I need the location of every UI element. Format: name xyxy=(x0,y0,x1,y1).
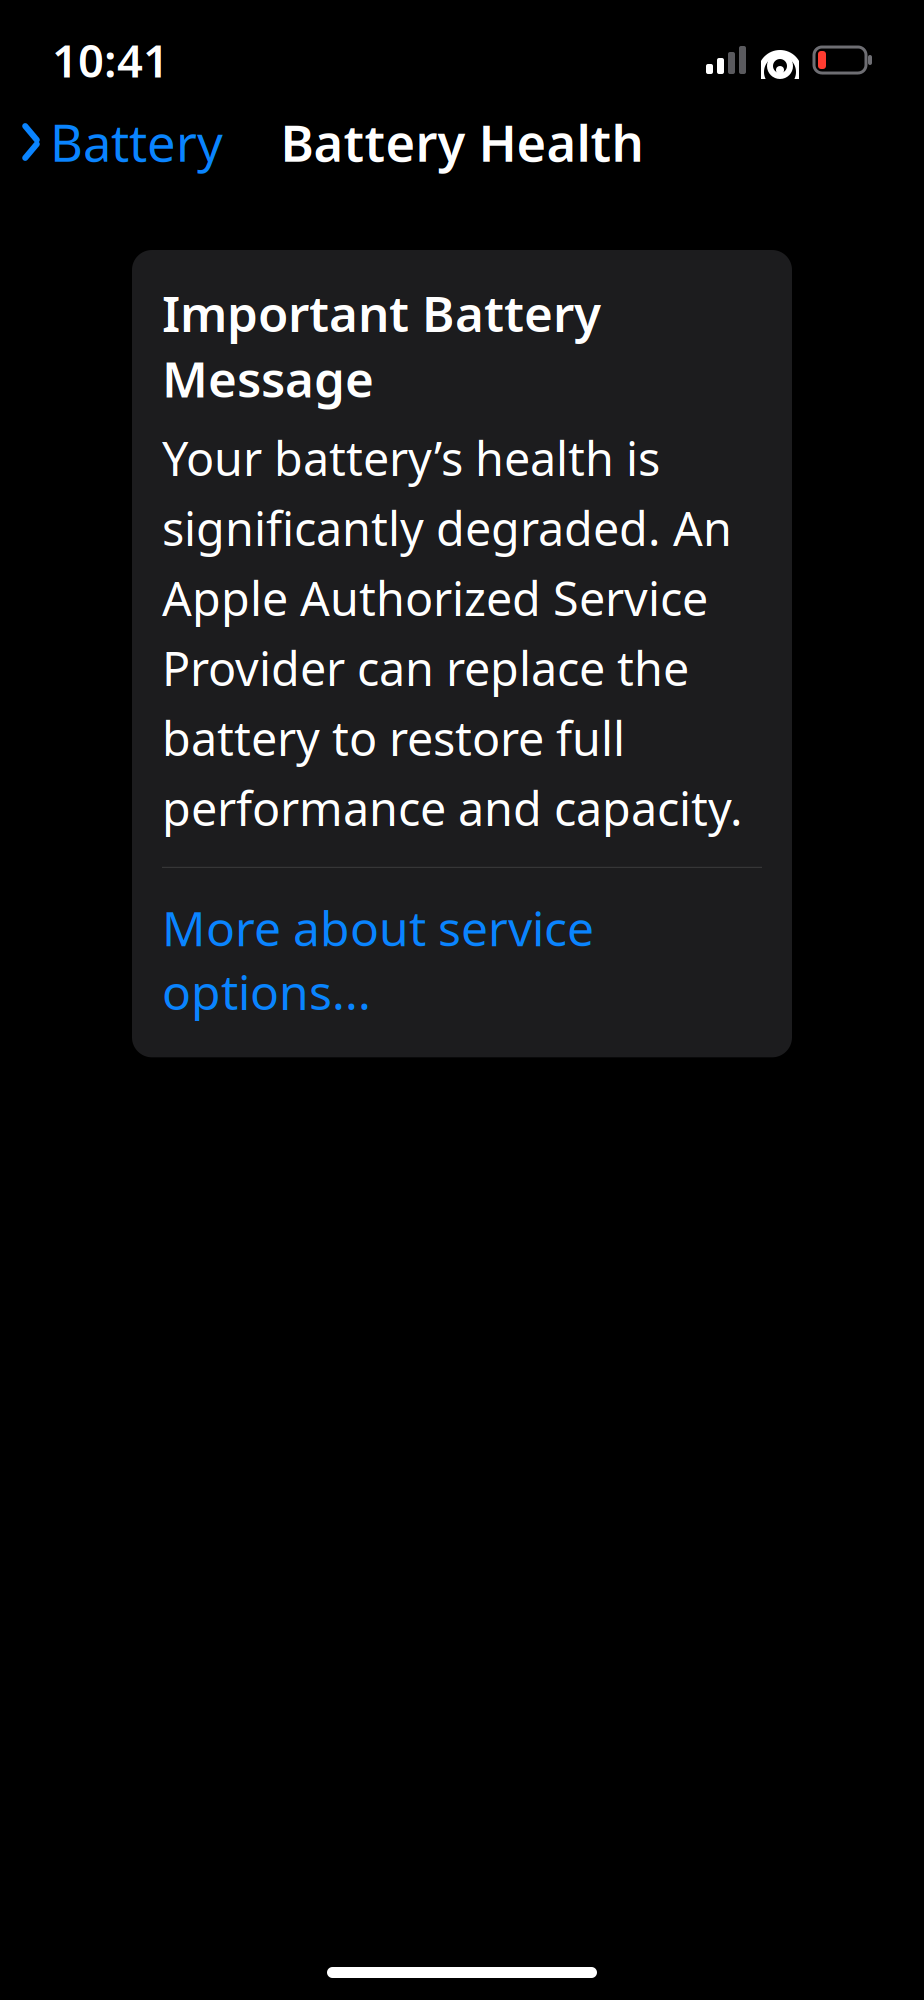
staticText: 10:41 xyxy=(52,30,169,90)
staticText: Your battery’s health is significantly d… xyxy=(162,427,743,839)
button[interactable]: Optimized Battery Charging xyxy=(132,1963,792,2000)
staticText: Battery Health xyxy=(280,108,643,176)
button[interactable]: Battery xyxy=(0,98,243,186)
staticText: Optimized Battery Charging xyxy=(162,1945,594,2000)
staticText: Battery xyxy=(50,108,223,176)
staticText: Important Battery Message xyxy=(162,280,601,411)
staticText: More about service options... xyxy=(162,896,594,1023)
button[interactable]: More about service options... xyxy=(162,868,762,1027)
